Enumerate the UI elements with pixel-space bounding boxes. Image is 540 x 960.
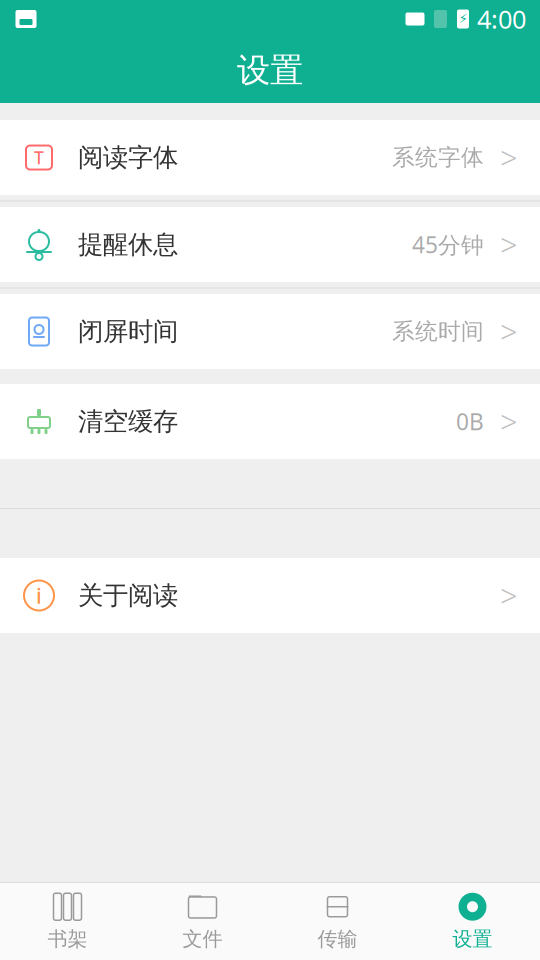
staticText: 文件 (182, 927, 222, 951)
staticText: 系统字体 (392, 144, 484, 171)
staticText: > (500, 575, 518, 616)
button[interactable]: i (0, 558, 540, 633)
staticText: 0B (456, 406, 484, 436)
button[interactable]: 传输 (270, 883, 405, 960)
button[interactable]: 闭屏时间 (0, 294, 540, 369)
staticText: 阅读字体 (78, 142, 178, 173)
staticText: > (500, 311, 518, 352)
staticText: ⚡︎ (458, 11, 467, 26)
staticText: 清空缓存 (78, 406, 178, 437)
button[interactable]: 书架 (0, 883, 135, 960)
button[interactable]: T (0, 120, 540, 195)
staticText: 4:00 (477, 2, 526, 36)
staticText: 系统时间 (392, 318, 484, 345)
staticText: 书架 (47, 927, 87, 951)
staticText: 45分钟 (412, 229, 484, 259)
staticText: 设置 (237, 50, 303, 91)
staticText: T (34, 146, 44, 169)
button[interactable]: 清空缓存 (0, 384, 540, 459)
staticText: > (500, 224, 518, 265)
staticText: 设置 (452, 927, 492, 951)
staticText: 关于阅读 (78, 580, 178, 611)
staticText: 提醒休息 (78, 229, 178, 260)
staticText: 传输 (317, 927, 357, 951)
staticText: 闭屏时间 (78, 316, 178, 347)
staticText: > (500, 401, 518, 442)
staticText: > (500, 137, 518, 178)
staticText: i (36, 581, 42, 610)
button[interactable]: 提醒休息 (0, 207, 540, 282)
button[interactable]: 设置 (405, 883, 540, 960)
button[interactable]: 文件 (135, 883, 270, 960)
